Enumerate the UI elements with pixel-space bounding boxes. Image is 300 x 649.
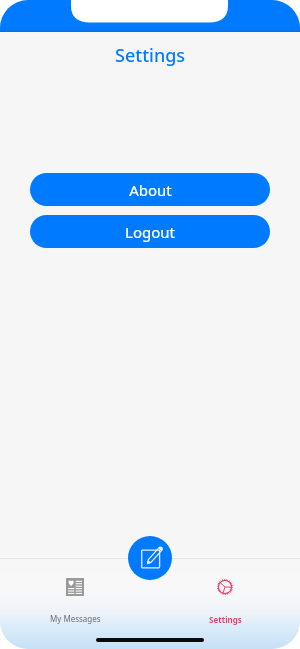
button[interactable]: Compose new message bbox=[128, 536, 172, 580]
button[interactable]: About bbox=[30, 173, 270, 206]
staticText: Settings bbox=[209, 614, 242, 625]
staticText: Settings bbox=[115, 43, 186, 68]
staticText: My Messages bbox=[50, 613, 101, 624]
button[interactable]: Settings bbox=[150, 557, 300, 649]
button[interactable]: My Messages bbox=[0, 557, 150, 649]
staticText: About bbox=[129, 180, 172, 200]
button[interactable]: Logout bbox=[30, 215, 270, 248]
staticText: Logout bbox=[125, 222, 175, 242]
